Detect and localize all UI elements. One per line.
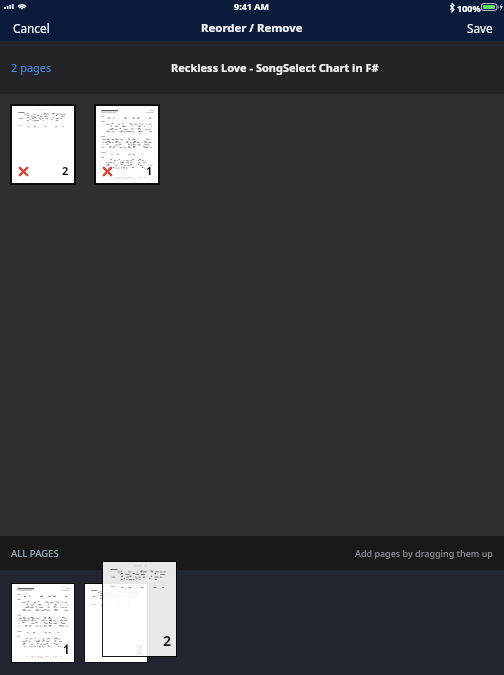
staticText: 2 pages [11, 60, 52, 75]
other: Remove page 1 [103, 167, 112, 176]
button[interactable]: 1 [11, 583, 75, 663]
staticText: Reckless Love - SongSelect Chart in F# [171, 60, 379, 75]
staticText: 1 [146, 163, 153, 178]
staticText: Reorder / Remove [201, 20, 303, 36]
staticText: Save [467, 20, 493, 36]
other: Remove page 2 [19, 167, 28, 176]
staticText: Cancel [13, 20, 50, 36]
button[interactable]: Remove page 2 [10, 104, 76, 185]
button[interactable]: 2 pages [0, 54, 63, 81]
button[interactable]: Save [456, 15, 504, 41]
staticText: 2 [136, 642, 143, 658]
button[interactable]: 2 [84, 583, 148, 663]
staticText: 2 [163, 631, 172, 650]
staticText: Add pages by dragging them up [355, 547, 493, 559]
staticText: ALL PAGES [11, 547, 59, 560]
staticText: 9:41 AM [234, 0, 270, 12]
button[interactable]: Cancel [0, 15, 61, 41]
staticText: 1 [63, 642, 70, 658]
button[interactable]: 2 [102, 561, 177, 657]
staticText: 2 [62, 163, 69, 178]
staticText: 100% [457, 2, 481, 14]
button[interactable]: Remove page 1 [94, 104, 160, 185]
